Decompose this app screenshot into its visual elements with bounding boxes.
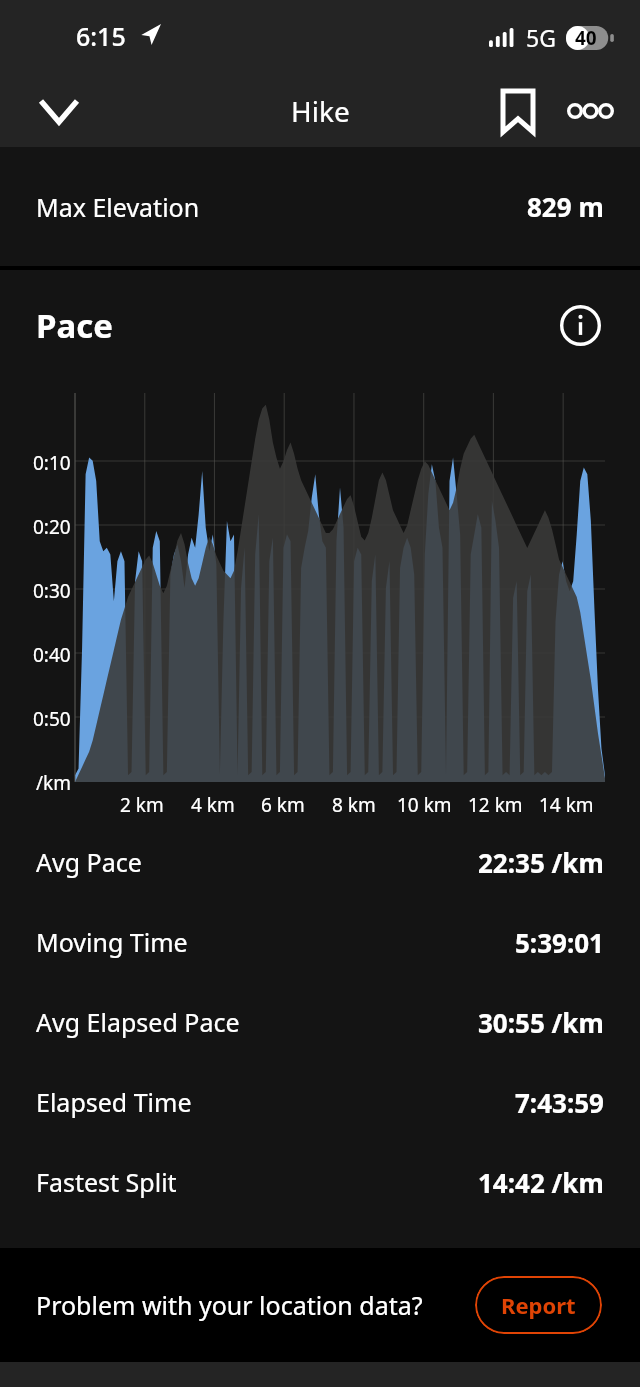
staticText: /km — [36, 770, 71, 796]
staticText: Fastest Split — [36, 1165, 177, 1199]
staticText: Elapsed Time — [36, 1085, 192, 1119]
staticText: Report — [501, 1290, 576, 1320]
staticText: Problem with your location data? — [36, 1288, 423, 1322]
button[interactable]: Moving Time — [0, 902, 640, 982]
staticText: 30:55 /km — [478, 1005, 604, 1040]
staticText: 5:39:01 — [515, 925, 604, 960]
staticText: 12 km — [468, 792, 523, 818]
button[interactable]: Max Elevation — [0, 147, 640, 266]
staticText: 5G — [526, 22, 556, 53]
staticText: 6 km — [261, 792, 305, 818]
button[interactable]: Info about pace — [552, 297, 608, 353]
staticText: 10 km — [397, 792, 452, 818]
button[interactable]: Elapsed Time — [0, 1062, 640, 1142]
staticText: Moving Time — [36, 925, 188, 959]
staticText: 0:20 — [33, 514, 71, 540]
staticText: Hike — [291, 92, 350, 130]
staticText: Avg Elapsed Pace — [36, 1005, 240, 1039]
staticText: 40 — [575, 25, 597, 51]
button[interactable]: Fastest Split — [0, 1142, 640, 1222]
staticText: 0:40 — [33, 642, 71, 668]
button[interactable]: Avg Pace — [0, 822, 640, 902]
staticText: 7:43:59 — [515, 1085, 604, 1120]
staticText: 22:35 /km — [478, 845, 604, 880]
button[interactable]: More options — [558, 79, 622, 143]
staticText: 6:15 — [76, 19, 126, 53]
button[interactable]: Avg Elapsed Pace — [0, 982, 640, 1062]
staticText: 0:50 — [33, 706, 71, 732]
staticText: Avg Pace — [36, 845, 142, 879]
button[interactable]: Collapse — [26, 78, 92, 144]
button[interactable]: Bookmark — [486, 79, 550, 143]
staticText: Max Elevation — [36, 190, 200, 224]
staticText: 0:30 — [33, 578, 71, 604]
staticText: 14:42 /km — [478, 1165, 604, 1200]
staticText: 8 km — [332, 792, 376, 818]
staticText: 0:10 — [33, 450, 71, 476]
staticText: 14 km — [539, 792, 594, 818]
staticText: 2 km — [120, 792, 164, 818]
staticText: 4 km — [191, 792, 235, 818]
staticText: 829 m — [527, 189, 604, 224]
staticText: Pace — [36, 303, 113, 348]
button[interactable]: Report — [475, 1276, 602, 1334]
